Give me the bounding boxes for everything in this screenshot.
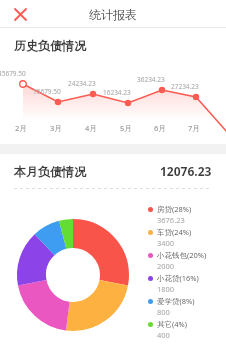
staticText: 5月 (120, 123, 132, 133)
staticText: 7月 (188, 123, 200, 133)
button[interactable]: 小花钱包(20%) (148, 250, 226, 273)
staticText: 其它(4%) (157, 319, 188, 329)
staticText: 历史负债情况 (14, 38, 86, 53)
staticText: 2000 (157, 261, 175, 271)
button[interactable]: 小花贷(16%) (148, 273, 226, 296)
staticText: 24234.23 (68, 79, 96, 88)
staticText: 15679.50 (33, 87, 61, 96)
staticText: 小花贷(16%) (157, 273, 199, 283)
staticText: 统计报表 (89, 7, 137, 22)
staticText: 本月负债情况 (14, 164, 86, 179)
staticText: 1800 (157, 284, 175, 294)
button[interactable]: 爱学贷(8%) (148, 296, 226, 319)
staticText: 16234.23 (103, 88, 131, 97)
staticText: 36234.23 (137, 75, 165, 84)
staticText: 爱学贷(8%) (157, 296, 195, 306)
staticText: 45679.50 (0, 69, 26, 78)
staticText: 800 (157, 307, 170, 317)
staticText: 400 (157, 330, 170, 340)
staticText: 小花钱包(20%) (157, 250, 207, 260)
staticText: 3400 (157, 238, 175, 248)
staticText: 车贷(24%) (157, 227, 192, 237)
button[interactable]: 其它(4%) (148, 319, 226, 342)
staticText: 3月 (50, 123, 62, 133)
staticText: 房贷(28%) (157, 204, 192, 214)
button[interactable]: 车贷(24%) (148, 227, 226, 250)
staticText: 2月 (15, 123, 27, 133)
staticText: 27234.23 (171, 82, 199, 91)
staticText: 12076.23 (160, 163, 212, 179)
button[interactable]: 房贷(28%) (148, 204, 226, 227)
staticText: 4月 (85, 123, 97, 133)
staticText: 3676.23 (157, 215, 185, 225)
staticText: 6月 (154, 123, 166, 133)
button[interactable]: Close (8, 2, 32, 26)
